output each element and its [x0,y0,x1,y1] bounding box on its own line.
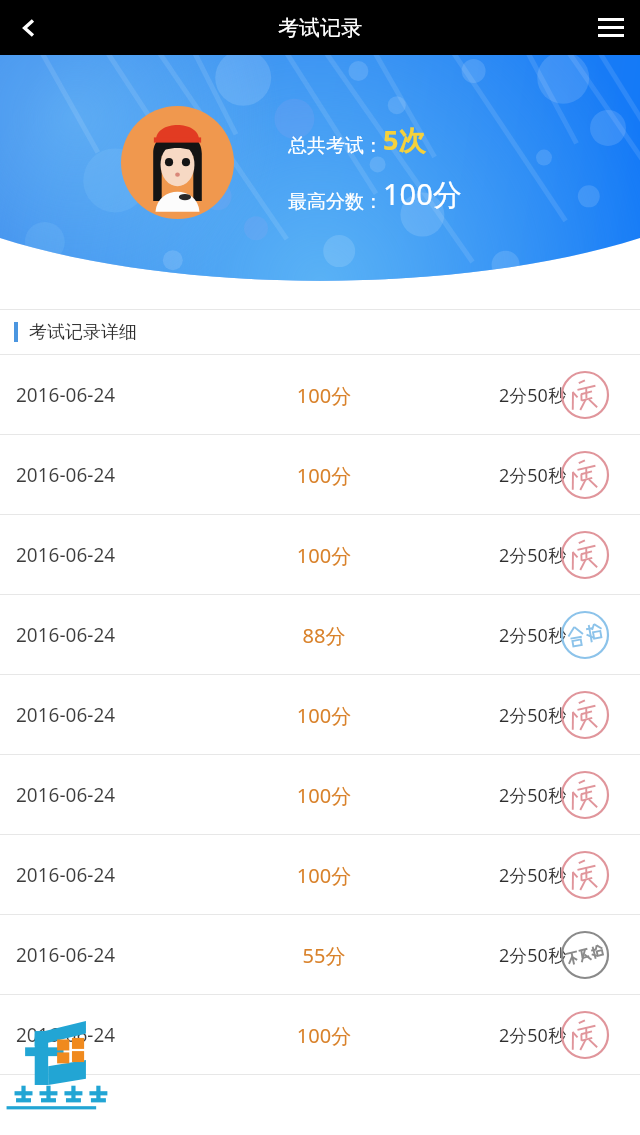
staticText: 2分50秒 [499,1023,566,1048]
staticText: 2分50秒 [499,863,566,888]
staticText: 2016-06-24 [16,542,116,568]
button[interactable]: Menu [582,0,640,55]
staticText: 2分50秒 [499,543,566,568]
staticText: 2016-06-24 [16,702,116,728]
staticText: 2分50秒 [499,623,566,648]
staticText: 考试记录 [278,15,362,41]
staticText: 2分50秒 [499,943,566,968]
staticText: 最高分数： [288,190,383,214]
button[interactable]: 2016-06-24 [0,435,640,515]
staticText: 100分 [264,702,384,729]
staticText: 2016-06-24 [16,382,116,408]
button[interactable]: 2016-06-24 [0,675,640,755]
staticText: 100分 [264,862,384,889]
staticText: 2016-06-24 [16,1022,116,1048]
staticText: 55分 [264,942,384,969]
staticText: 2016-06-24 [16,462,116,488]
staticText: 2016-06-24 [16,862,116,888]
button[interactable]: 2016-06-24 [0,915,640,995]
button[interactable]: 2016-06-24 [0,355,640,435]
staticText: 2分50秒 [499,383,566,408]
button[interactable]: Back [0,0,58,55]
button[interactable]: 2016-06-24 [0,755,640,835]
staticText: 100分 [264,382,384,409]
staticText: 2分50秒 [499,783,566,808]
staticText: 2分50秒 [499,463,566,488]
button[interactable]: 2016-06-24 [0,595,640,675]
staticText: 5次 [383,121,426,158]
button[interactable]: 2016-06-24 [0,515,640,595]
staticText: 100分 [264,782,384,809]
staticText: 2016-06-24 [16,942,116,968]
staticText: 2分50秒 [499,703,566,728]
staticText: 100分 [383,174,462,214]
staticText: 88分 [264,622,384,649]
staticText: 2016-06-24 [16,622,116,648]
staticText: 总共考试： [288,134,383,158]
staticText: 2016-06-24 [16,782,116,808]
button[interactable]: 2016-06-24 [0,995,640,1075]
staticText: 100分 [264,1022,384,1049]
button[interactable]: 2016-06-24 [0,835,640,915]
staticText: 100分 [264,462,384,489]
staticText: 100分 [264,542,384,569]
staticText: 考试记录详细 [29,321,137,344]
